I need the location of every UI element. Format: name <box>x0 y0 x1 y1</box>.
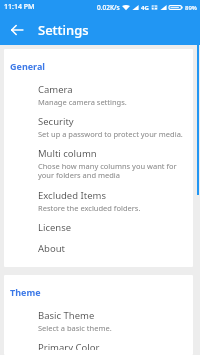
staticText: Camera <box>38 83 73 96</box>
staticText: General <box>10 60 46 72</box>
staticText: Settings <box>38 21 89 39</box>
staticText: 0.02K/s <box>97 3 120 12</box>
button[interactable]: Primary Color <box>4 338 193 355</box>
button[interactable]: License <box>4 218 193 239</box>
staticText: 11:14 PM <box>4 2 35 12</box>
staticText: 89% <box>185 4 197 12</box>
button[interactable]: Excluded Items <box>4 186 193 218</box>
staticText: Set up a password to protect your media. <box>38 129 183 139</box>
staticText: Manage camera settings. <box>38 97 127 107</box>
button[interactable]: Security <box>4 112 193 144</box>
button[interactable]: Back <box>6 19 28 41</box>
staticText: About <box>38 242 65 255</box>
staticText: License <box>38 221 72 234</box>
staticText: Restore the excluded folders. <box>38 203 141 213</box>
button[interactable]: Camera <box>4 80 193 112</box>
staticText: Basic Theme <box>38 309 95 322</box>
staticText: Select a basic theme. <box>38 323 112 333</box>
staticText: Multi column <box>38 147 97 160</box>
staticText: 4G <box>141 4 149 12</box>
staticText: Security <box>38 115 74 128</box>
staticText: Excluded Items <box>38 189 106 202</box>
staticText: Primary Color <box>38 341 100 350</box>
staticText: Theme <box>10 286 41 298</box>
button[interactable]: About <box>4 239 193 260</box>
button[interactable]: Multi column <box>4 144 193 186</box>
button[interactable]: Basic Theme <box>4 306 193 338</box>
staticText: Chose how many columns you want for your… <box>38 161 185 181</box>
